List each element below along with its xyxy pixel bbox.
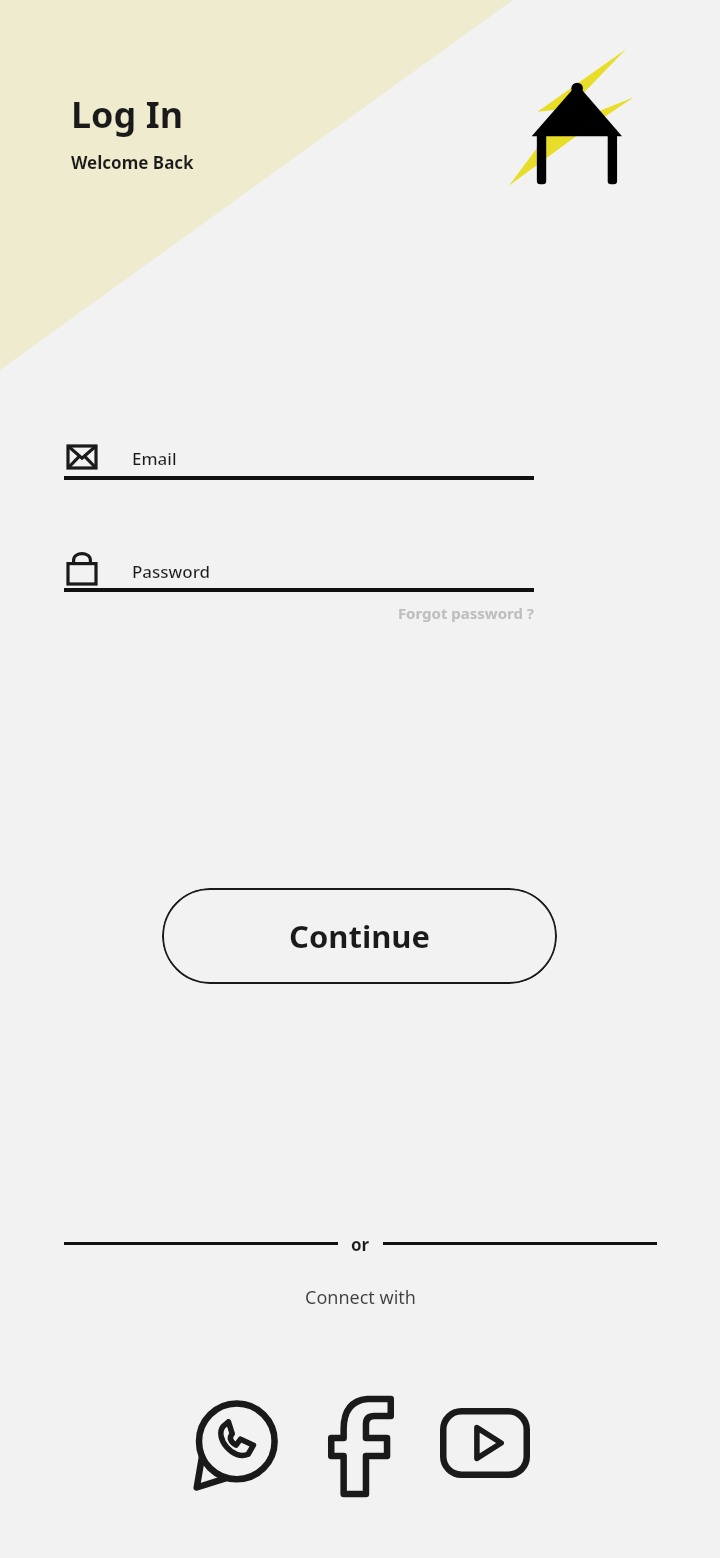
staticText: Email: [132, 447, 177, 470]
button[interactable]: WhatsApp: [188, 1398, 282, 1492]
button[interactable]: Password: [64, 542, 534, 592]
button[interactable]: Email: [64, 432, 534, 482]
other: App logo: [505, 45, 635, 190]
button[interactable]: Continue: [162, 888, 557, 984]
button[interactable]: YouTube: [438, 1406, 532, 1480]
staticText: Continue: [289, 915, 430, 957]
staticText: Log In: [71, 90, 184, 139]
button[interactable]: Forgot password ?: [330, 598, 534, 628]
staticText: Welcome Back: [71, 151, 194, 174]
staticText: or: [351, 1233, 370, 1256]
button[interactable]: Facebook: [330, 1396, 392, 1496]
staticText: Password: [132, 560, 211, 583]
staticText: Connect with: [305, 1285, 416, 1310]
staticText: Forgot password ?: [397, 603, 534, 623]
